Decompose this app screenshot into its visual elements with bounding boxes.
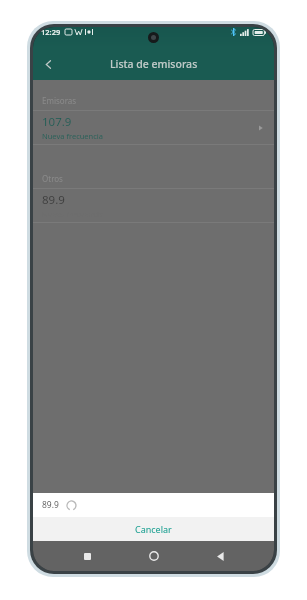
staticText: 107.9 — [42, 114, 72, 130]
staticText: Emisoras — [42, 95, 77, 106]
button[interactable]: Recent apps — [74, 543, 100, 569]
button[interactable]: Home — [141, 543, 167, 569]
staticText: Nueva frecuencia — [42, 131, 103, 141]
button[interactable]: 89.9 — [33, 189, 274, 222]
staticText: 12:29 — [41, 27, 61, 37]
staticText: 89.9 — [42, 499, 59, 511]
button[interactable]: Cancelar — [33, 517, 274, 541]
staticText: Cancelar — [135, 523, 172, 535]
button[interactable]: Back — [207, 543, 233, 569]
staticText: 89.9 — [42, 192, 65, 208]
button[interactable]: Back — [33, 49, 63, 79]
staticText: Otros — [42, 173, 63, 184]
button[interactable]: 107.9 — [33, 111, 274, 144]
staticText: Lista de emisoras — [110, 57, 198, 71]
